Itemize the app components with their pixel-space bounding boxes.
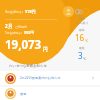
staticText: ℃ — [85, 39, 89, 43]
staticText: ¥78円 — [25, 9, 36, 14]
staticText: 3月お支払い — [5, 10, 23, 14]
staticText: ¥93円 — [24, 30, 34, 35]
staticText: 最低 — [79, 46, 85, 50]
staticText: 1.8/1 — [78, 17, 86, 21]
staticText: ご利用分 — [15, 25, 28, 29]
staticText: 最高 — [79, 28, 85, 32]
staticText: 1月お支払い — [5, 31, 22, 35]
button[interactable]: 2月22日重要案内のお知らせ — [0, 71, 100, 85]
staticText: 重要 — [20, 92, 27, 96]
button[interactable]: アカウント — [63, 6, 74, 17]
staticText: 3 — [78, 50, 83, 61]
staticText: 円 — [43, 47, 48, 53]
button[interactable]: 重要 — [0, 87, 100, 100]
button[interactable]: 1.8/1 — [66, 7, 98, 61]
staticText: のち曇り — [76, 21, 89, 25]
staticText: ℃ — [83, 57, 87, 61]
staticText: 16 — [75, 32, 85, 43]
staticText: たいせつな新着お知らせ — [9, 64, 47, 68]
staticText: 19,073 — [5, 37, 42, 53]
staticText: 2月 — [5, 23, 13, 29]
staticText: 2月22日重要案内のお知らせ — [20, 76, 61, 80]
